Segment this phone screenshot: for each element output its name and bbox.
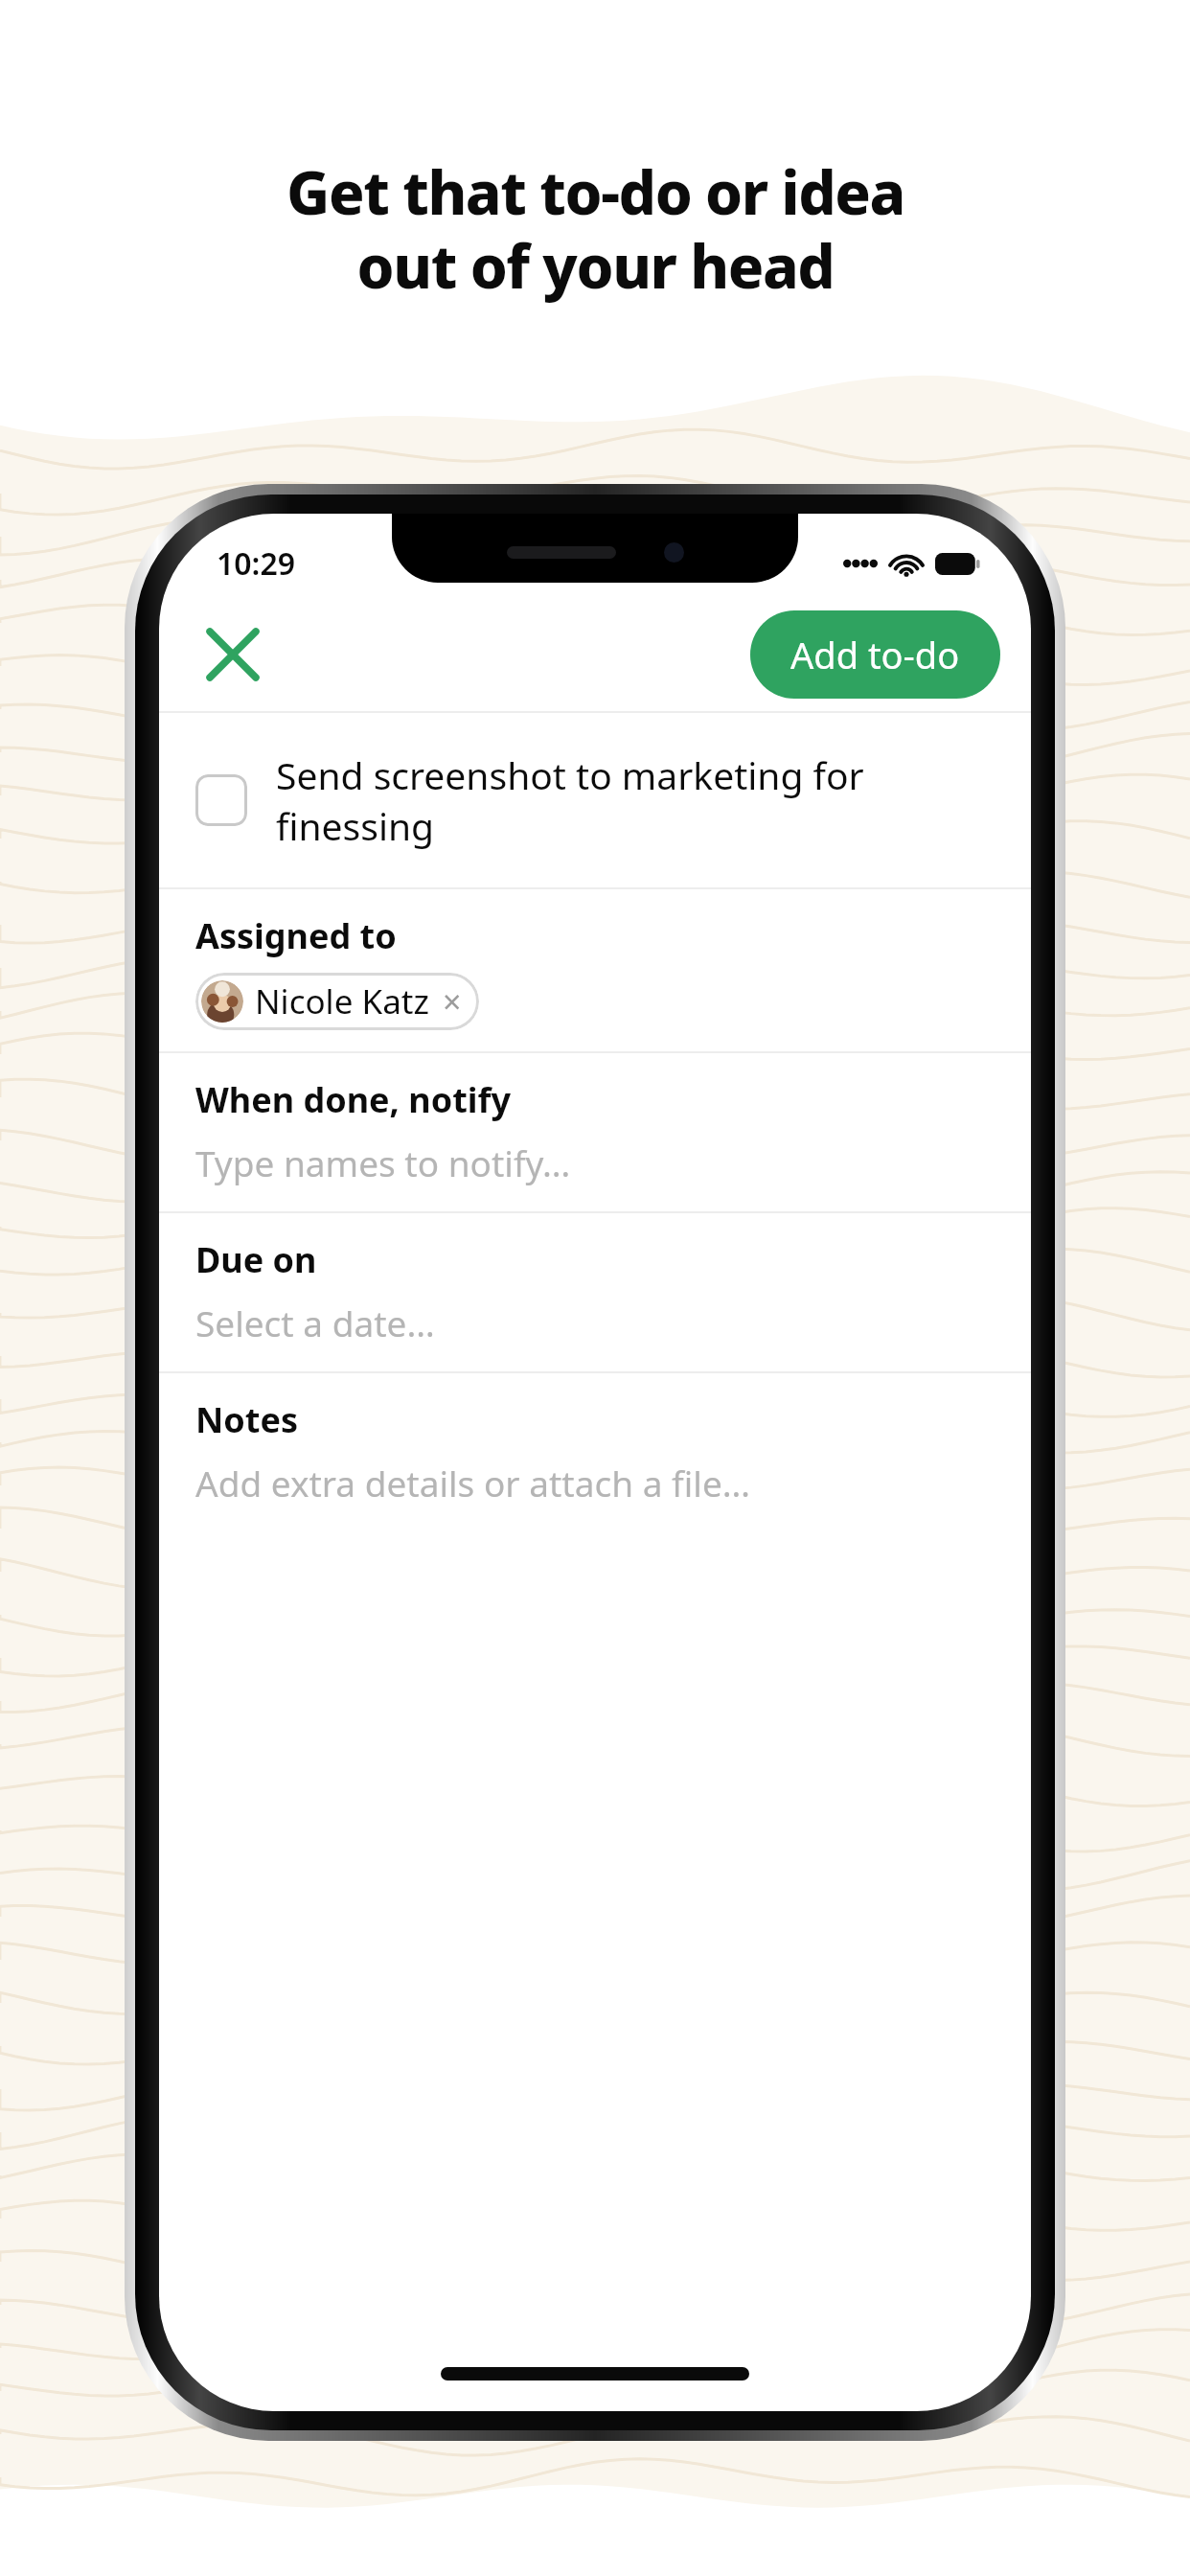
staticText: When done, notify <box>195 1076 512 1123</box>
button[interactable]: Send screenshot to marketing for finessi… <box>159 713 1031 887</box>
button[interactable]: Assigned to <box>159 889 1031 1051</box>
button[interactable]: Due on <box>159 1213 1031 1371</box>
staticText: 10:29 <box>217 542 296 585</box>
staticText: Add extra details or attach a file… <box>195 1459 751 1506</box>
staticText: × <box>443 979 462 1023</box>
staticText: Add to-do <box>790 630 960 679</box>
button[interactable]: Add to-do <box>750 610 1000 699</box>
staticText: Send screenshot to marketing for finessi… <box>276 749 1012 851</box>
button[interactable]: Notes <box>159 1373 1031 1531</box>
staticText: Assigned to <box>195 912 397 959</box>
button[interactable]: Nicole Katz <box>195 973 479 1030</box>
button[interactable]: When done, notify <box>159 1053 1031 1211</box>
staticText: Nicole Katz <box>255 978 429 1024</box>
button[interactable]: Close <box>192 613 274 696</box>
staticText: Due on <box>195 1236 317 1283</box>
staticText: Get that to-do or idea out of your head <box>286 151 904 306</box>
staticText: Type names to notify… <box>195 1138 571 1186</box>
staticText: Select a date… <box>195 1299 435 1346</box>
staticText: Notes <box>195 1396 298 1443</box>
